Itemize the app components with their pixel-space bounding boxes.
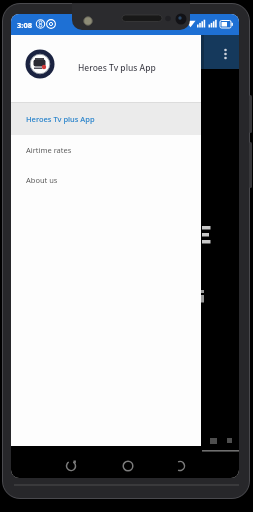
staticText: About us <box>26 175 58 185</box>
button[interactable]: Airtime rates <box>11 135 201 165</box>
button[interactable]: Heroes Tv plus App <box>11 103 201 135</box>
button[interactable] <box>168 454 192 478</box>
staticText: Heroes Tv plus App <box>26 114 95 124</box>
staticText: Airtime rates <box>26 145 72 155</box>
button[interactable]: About us <box>11 165 201 195</box>
button[interactable] <box>59 454 83 478</box>
staticText: 3:08 <box>17 20 32 30</box>
button[interactable] <box>201 35 239 69</box>
button[interactable] <box>116 454 140 478</box>
staticText: Heroes Tv plus App <box>78 62 156 74</box>
